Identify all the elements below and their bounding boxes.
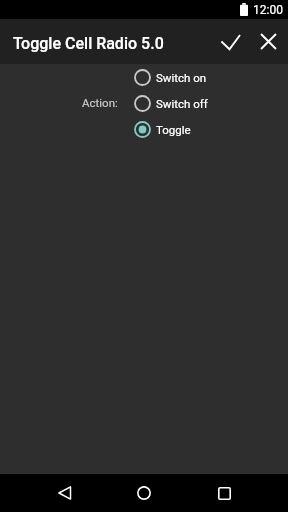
staticText: 12:00 — [253, 3, 283, 17]
staticText: Action: — [82, 96, 118, 109]
staticText: Switch off — [156, 97, 208, 110]
button[interactable]: Home — [118, 474, 170, 512]
staticText: Toggle Cell Radio 5.0 — [13, 34, 164, 53]
button[interactable]: Switch off — [134, 90, 208, 116]
staticText: Switch on — [156, 71, 207, 84]
staticText: Toggle — [156, 123, 191, 136]
button[interactable]: Switch on — [134, 64, 207, 90]
button[interactable]: Cancel — [250, 19, 288, 64]
button[interactable]: Done — [211, 19, 249, 64]
button[interactable]: Recents — [198, 474, 250, 512]
button[interactable]: Toggle — [134, 116, 191, 142]
button[interactable]: Back — [38, 474, 90, 512]
